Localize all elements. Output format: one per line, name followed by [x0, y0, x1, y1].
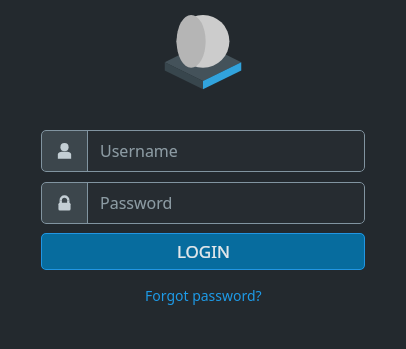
button[interactable]: LOGIN: [41, 233, 365, 270]
other: Password: [41, 182, 87, 224]
staticText: Password: [100, 192, 173, 214]
other: Username: [41, 130, 87, 172]
button[interactable]: Forgot password?: [139, 283, 268, 308]
button[interactable]: Username: [41, 130, 365, 172]
staticText: Forgot password?: [145, 286, 262, 305]
button[interactable]: Password: [41, 182, 365, 224]
staticText: LOGIN: [177, 240, 230, 263]
staticText: Username: [100, 140, 178, 162]
